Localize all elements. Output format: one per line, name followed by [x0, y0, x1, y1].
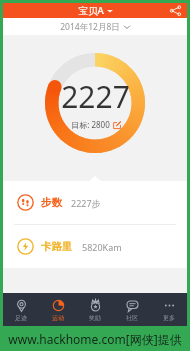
button[interactable]: Share: [169, 4, 182, 17]
staticText: 社区: [126, 314, 138, 322]
button[interactable]: 奖励: [76, 293, 113, 326]
button[interactable]: Calories: [3, 225, 187, 268]
button[interactable]: 社区: [113, 293, 150, 326]
button[interactable]: Edit goal: [112, 120, 121, 129]
staticText: 奖励: [89, 314, 101, 322]
staticText: 宝贝A: [78, 4, 104, 17]
staticText: 步数: [41, 196, 62, 209]
staticText: 更多: [163, 314, 175, 322]
button[interactable]: Steps: [3, 181, 187, 224]
button[interactable]: 宝贝A: [74, 4, 117, 17]
button[interactable]: 2014年12月8日: [3, 18, 187, 35]
staticText: 2014年12月8日: [60, 21, 120, 33]
staticText: 运动: [52, 314, 64, 322]
button[interactable]: 运动: [39, 293, 76, 326]
staticText: 目标: 2800: [71, 119, 110, 130]
button[interactable]: 足迹: [3, 293, 39, 326]
other: Calories: [17, 238, 34, 255]
staticText: 2227: [61, 76, 130, 117]
staticText: 2227步: [71, 197, 101, 209]
other: Steps: [17, 194, 34, 211]
staticText: www.hackhome.com[网侠]提供: [8, 331, 182, 347]
button[interactable]: 更多: [150, 293, 187, 326]
staticText: 5820Kam: [82, 241, 122, 253]
staticText: 足迹: [15, 314, 27, 322]
staticText: 卡路里: [41, 240, 73, 253]
